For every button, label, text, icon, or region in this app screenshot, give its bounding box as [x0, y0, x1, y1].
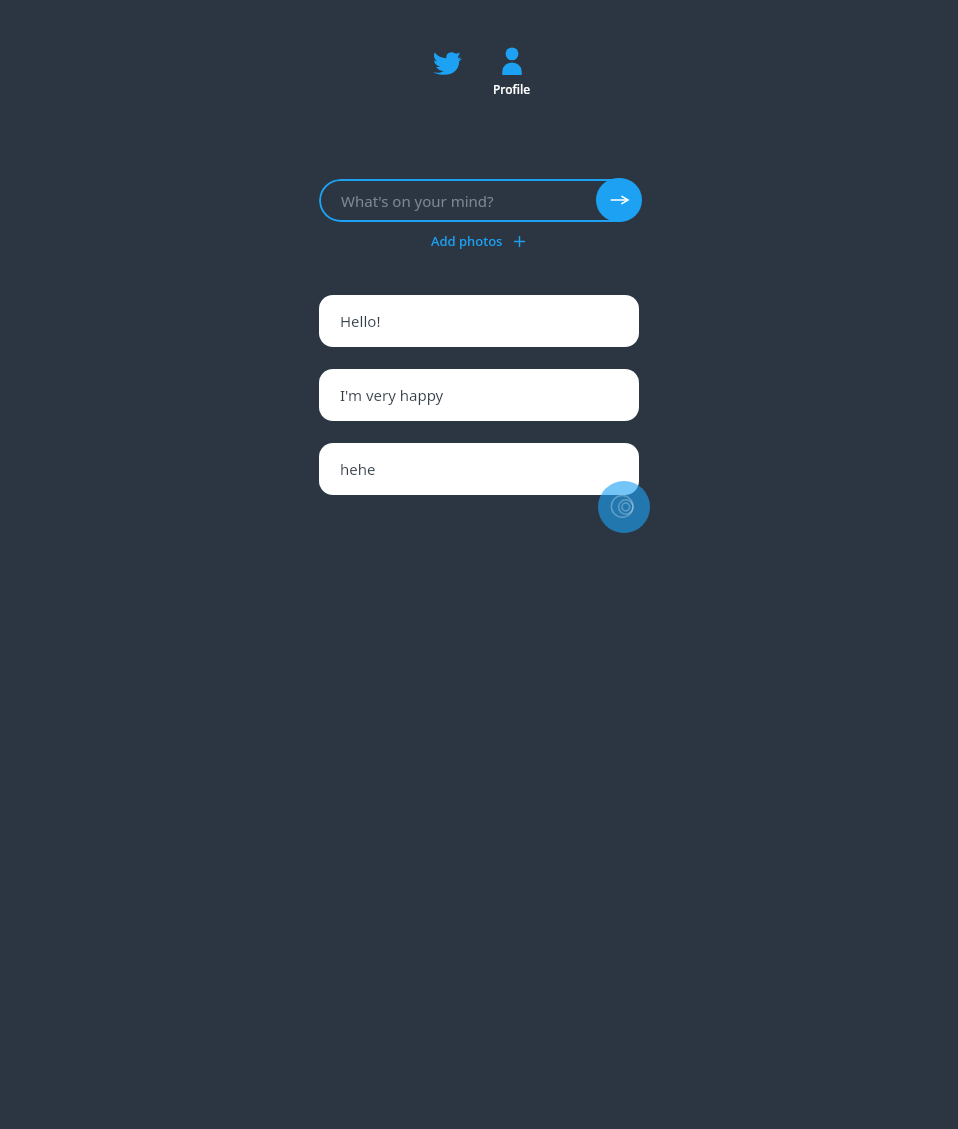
staticText: Hello!: [340, 311, 381, 331]
button[interactable]: Send: [596, 178, 642, 222]
staticText: What's on your mind?: [341, 191, 494, 211]
button[interactable]: I'm very happy: [319, 369, 639, 421]
button[interactable]: Hello!: [319, 295, 639, 347]
staticText: hehe: [340, 459, 376, 479]
button[interactable]: Add photos: [425, 228, 533, 254]
staticText: Profile: [493, 81, 531, 97]
staticText: I'm very happy: [340, 385, 444, 405]
button[interactable]: Profile: [484, 44, 540, 97]
staticText: Add photos: [431, 232, 503, 250]
button[interactable]: New post: [598, 481, 650, 533]
button[interactable]: What's on your mind?: [319, 179, 639, 222]
button[interactable]: hehe: [319, 443, 639, 495]
button[interactable]: Twitter: [418, 44, 474, 100]
